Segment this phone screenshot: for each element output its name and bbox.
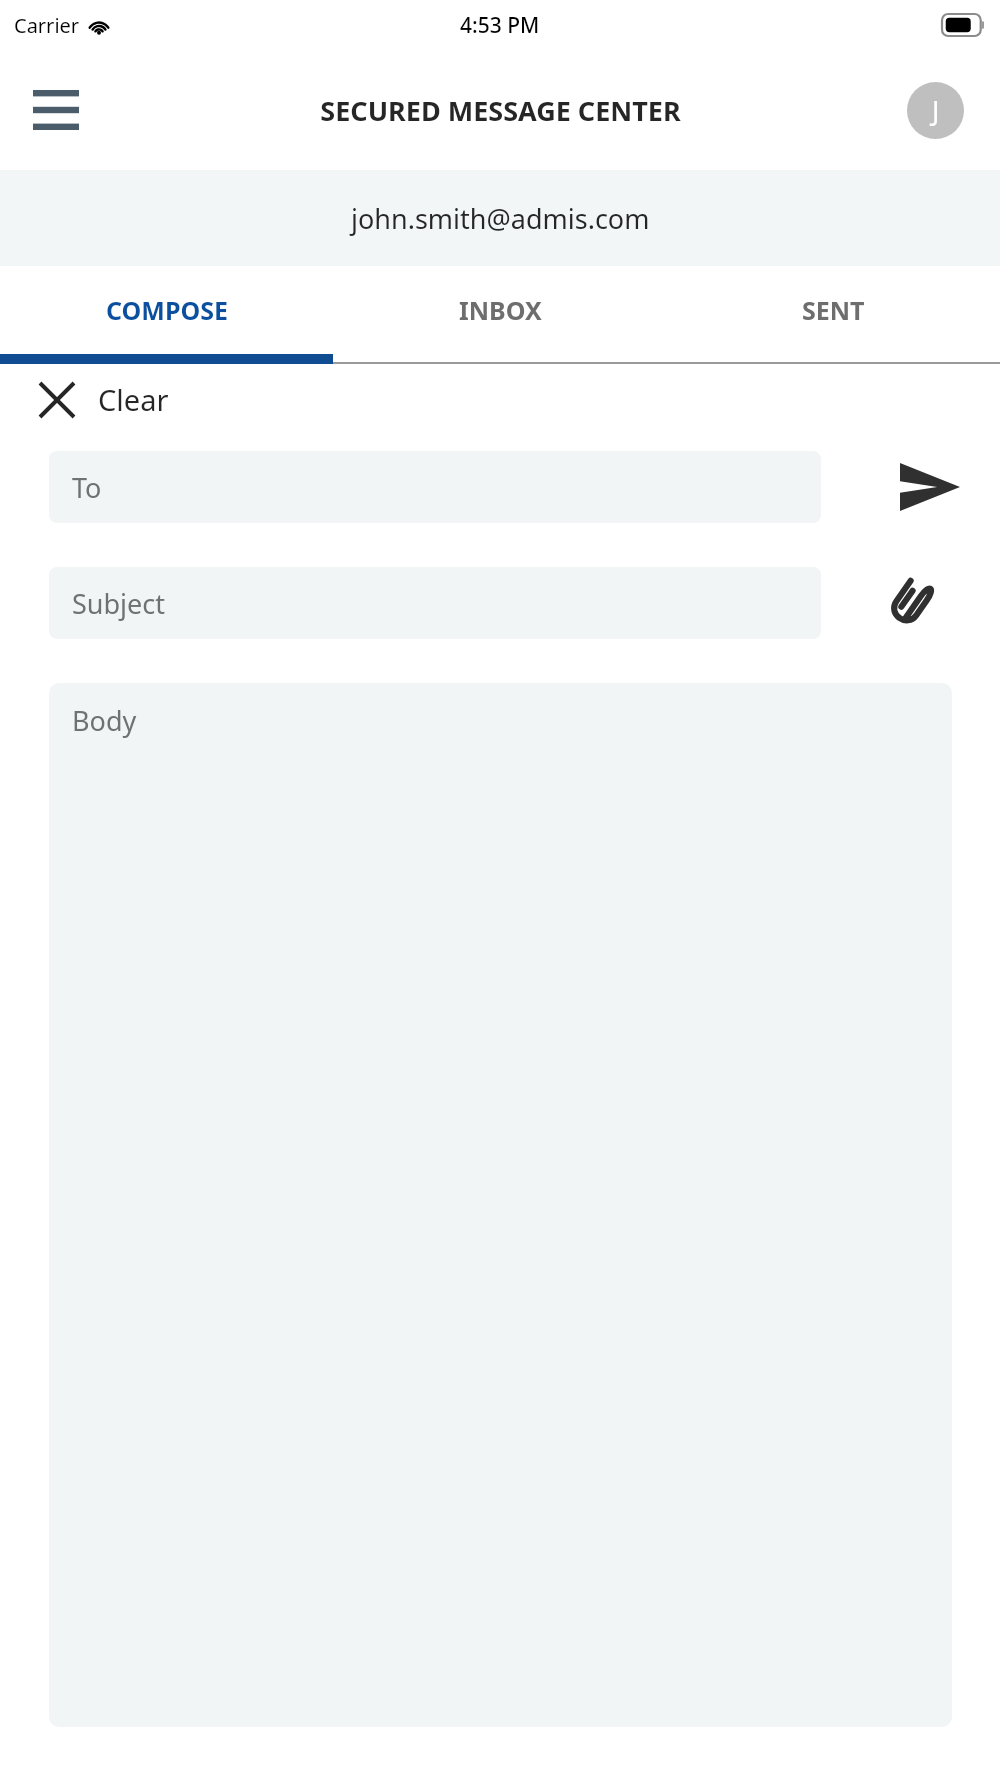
button[interactable]: Menu (24, 78, 88, 142)
button[interactable]: To (49, 451, 821, 523)
staticText: SENT (802, 293, 865, 327)
staticText: INBOX (459, 293, 542, 327)
button[interactable]: Send (896, 453, 964, 521)
button[interactable]: INBOX (334, 266, 667, 354)
staticText: Body (72, 702, 137, 739)
button[interactable]: Account (907, 82, 964, 139)
button[interactable]: Attach file (876, 569, 944, 637)
staticText: Subject (72, 585, 166, 622)
staticText: Carrier (14, 12, 80, 39)
staticText: SECURED MESSAGE CENTER (320, 92, 681, 129)
staticText: COMPOSE (106, 293, 228, 327)
staticText: Clear (98, 380, 169, 419)
staticText: J (932, 92, 940, 129)
button[interactable]: SENT (667, 266, 1000, 354)
button[interactable]: Subject (49, 567, 821, 639)
button[interactable]: Clear (40, 380, 169, 419)
button[interactable]: COMPOSE (0, 266, 334, 354)
staticText: john.smith@admis.com (351, 200, 650, 237)
staticText: 4:53 PM (460, 11, 540, 40)
staticText: To (72, 469, 102, 506)
